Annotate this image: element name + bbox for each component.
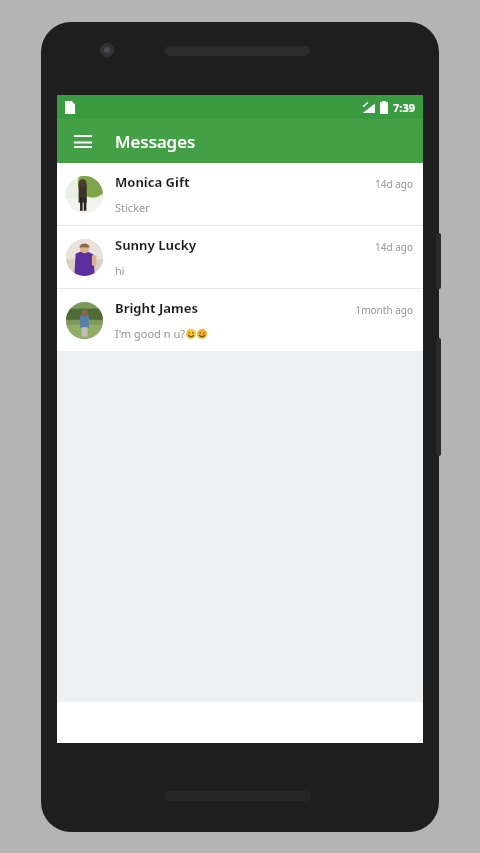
staticText: I'm good n u? — [115, 326, 185, 341]
staticText: 7:39 — [393, 100, 415, 115]
button[interactable]: Open navigation drawer — [65, 123, 101, 159]
staticText: Monica Gift — [115, 173, 190, 191]
staticText: Sunny Lucky — [115, 236, 197, 254]
staticText: hi — [115, 263, 125, 278]
button[interactable]: Bright James — [57, 289, 423, 351]
staticText: Bright James — [115, 299, 199, 317]
staticText: Messages — [115, 130, 196, 153]
staticText: 14d ago — [375, 177, 413, 191]
button[interactable]: Monica Gift — [57, 163, 423, 225]
staticText: 14d ago — [375, 240, 413, 254]
staticText: 1month ago — [355, 303, 413, 317]
staticText: Sticker — [115, 200, 150, 215]
button[interactable]: Sunny Lucky — [57, 226, 423, 288]
